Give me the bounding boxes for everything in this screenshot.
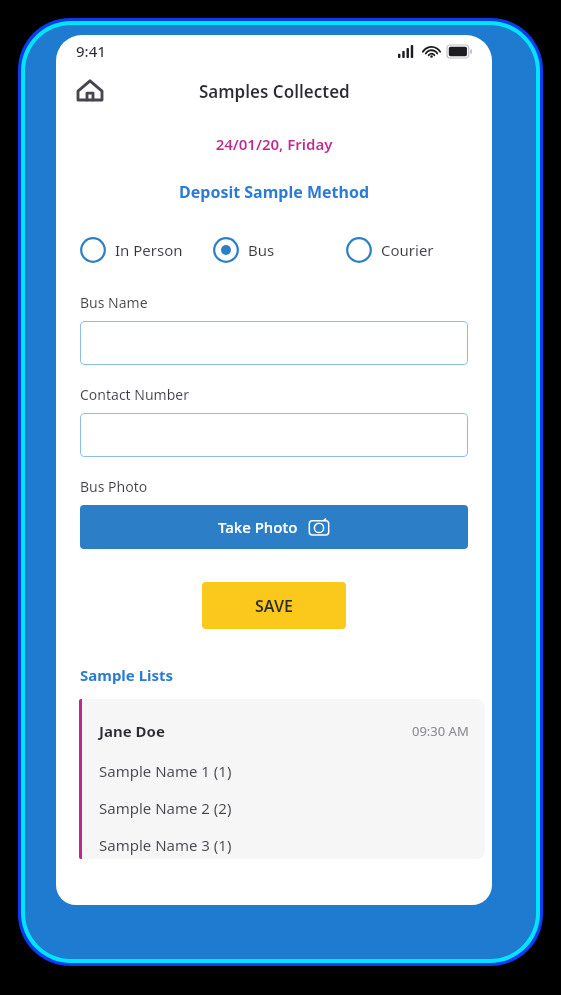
staticText: Sample Name 2 (2) [99,798,232,818]
staticText: Sample Name 1 (1) [99,761,232,781]
staticText: Courier [381,240,434,260]
button[interactable] [80,321,468,365]
button[interactable]: In Person [80,233,213,267]
staticText: Bus Name [80,293,148,312]
button[interactable] [80,413,468,457]
staticText: Deposit Sample Method [56,181,492,203]
staticText: Take Photo [218,517,298,537]
button[interactable]: SAVE [202,582,346,629]
staticText: Jane Doe [99,721,165,741]
staticText: Contact Number [80,385,189,404]
button[interactable]: Bus [213,233,346,267]
staticText: SAVE [255,595,293,617]
button[interactable]: Take Photo [80,505,468,549]
staticText: 9:41 [76,41,106,61]
button[interactable]: Jane Doe [79,699,485,859]
staticText: 24/01/20, Friday [56,134,492,154]
staticText: Bus [248,240,275,260]
staticText: In Person [115,240,183,260]
staticText: Bus Photo [80,477,148,496]
staticText: Sample Name 3 (1) [99,835,232,855]
button[interactable]: Courier [346,233,472,267]
staticText: 09:30 AM [412,722,469,740]
staticText: Sample Lists [80,665,174,685]
staticText: Samples Collected [199,80,350,103]
button[interactable]: Home [68,69,112,113]
